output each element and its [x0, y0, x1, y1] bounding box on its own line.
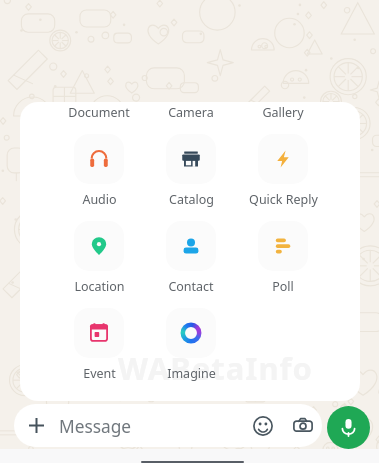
button[interactable]: Location — [56, 221, 142, 303]
button[interactable]: Attach — [14, 404, 322, 447]
staticText: Camera — [168, 104, 214, 121]
staticText: Location — [74, 278, 125, 295]
staticText: Catalog — [169, 191, 214, 208]
staticText: Document — [68, 104, 130, 121]
other: Camera — [293, 416, 313, 436]
staticText: Event — [83, 365, 116, 382]
staticText: Audio — [82, 191, 117, 208]
button[interactable]: Imagine — [148, 308, 234, 390]
button[interactable]: Catalog — [148, 134, 234, 216]
staticText: Quick Reply — [249, 191, 318, 208]
staticText: Imagine — [167, 365, 216, 382]
button[interactable]: Quick Reply — [240, 134, 326, 216]
button[interactable]: Voice message — [327, 406, 370, 449]
other: Attach — [29, 418, 44, 433]
staticText: Message — [59, 415, 132, 439]
staticText: Contact — [168, 278, 214, 295]
staticText: Poll — [272, 278, 294, 295]
staticText: Gallery — [262, 104, 304, 121]
other: Emoji — [253, 416, 273, 436]
button[interactable]: Document — [56, 102, 142, 129]
button[interactable]: Contact — [148, 221, 234, 303]
button[interactable]: Camera — [148, 102, 234, 129]
button[interactable]: Event — [56, 308, 142, 390]
button[interactable]: Gallery — [240, 102, 326, 129]
button[interactable]: Audio — [56, 134, 142, 216]
staticText: WABetaInfo — [118, 347, 313, 389]
button[interactable]: Poll — [240, 221, 326, 303]
